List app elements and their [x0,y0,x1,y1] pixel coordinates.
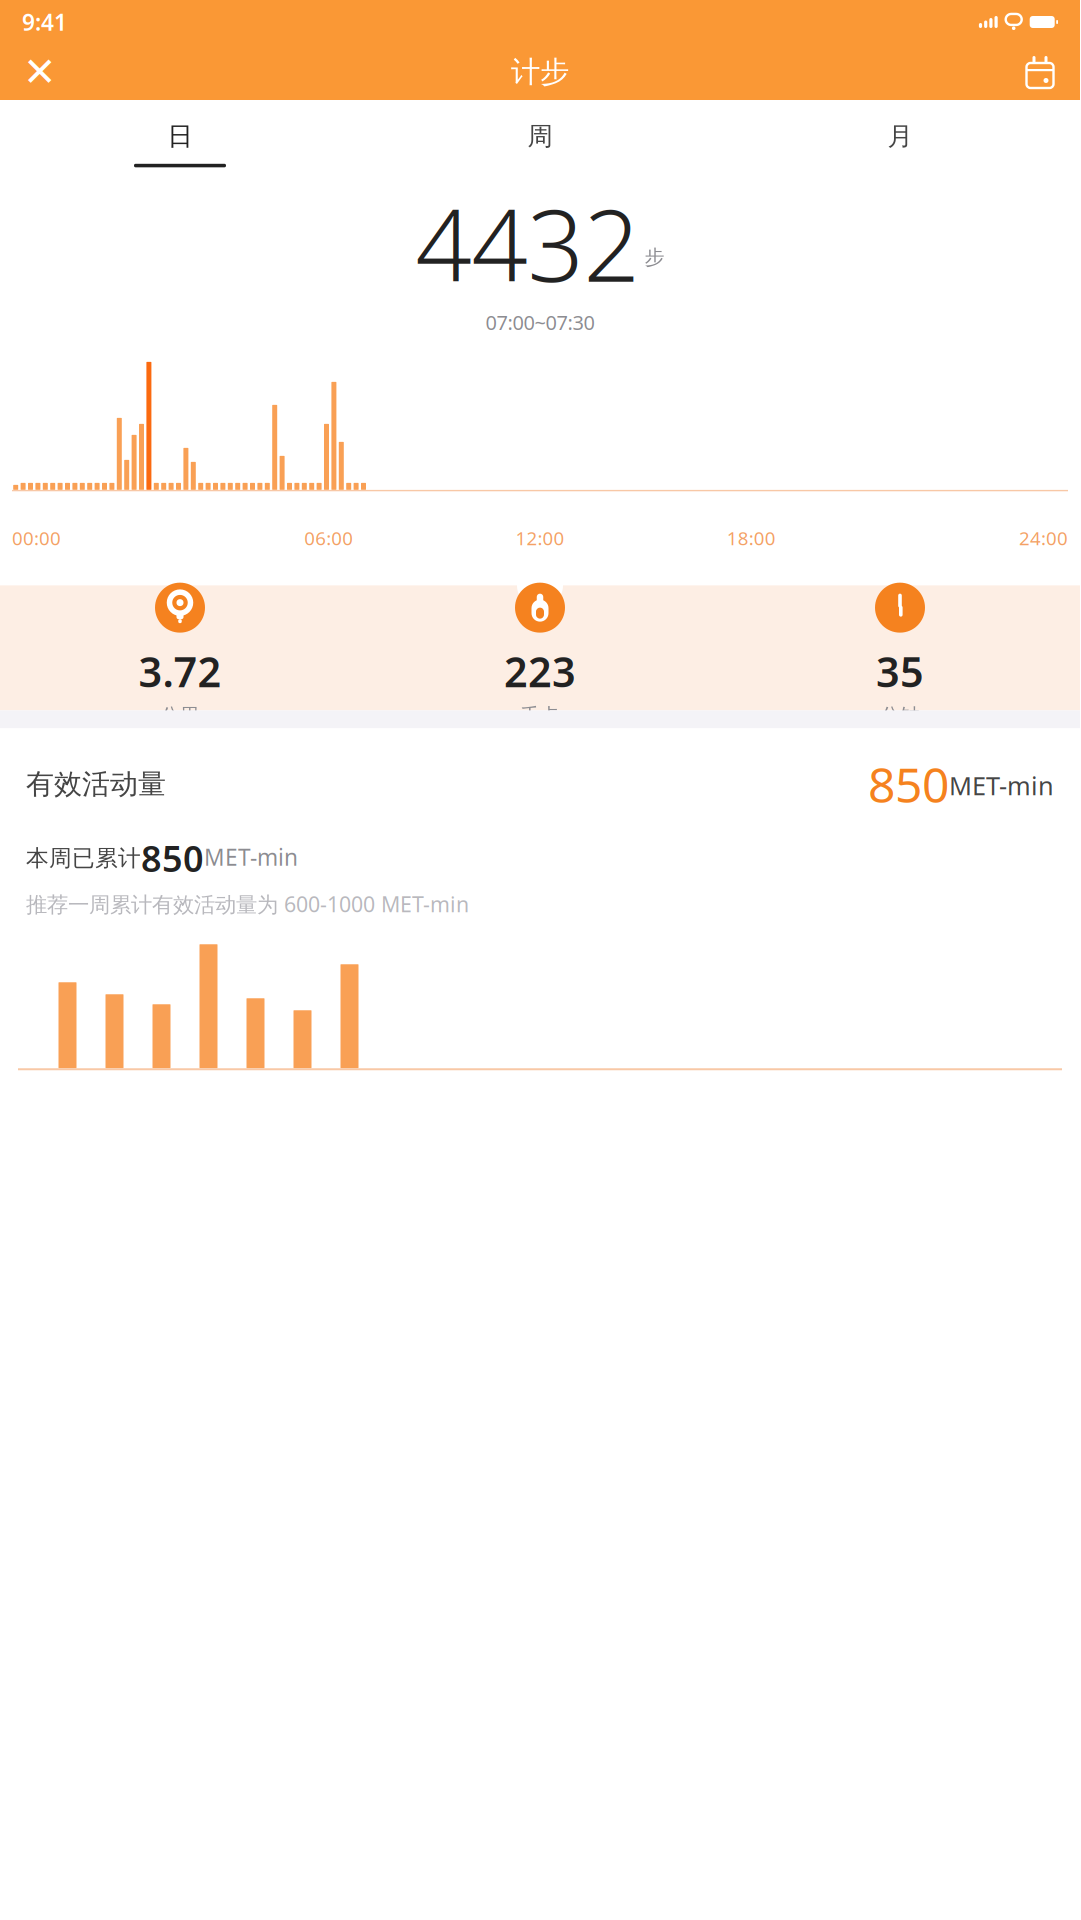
button[interactable]: 35 [720,583,1080,728]
staticText: 推荐一周累计有效活动量为 600-1000 MET-min [26,890,469,918]
button[interactable]: 3.72 [0,583,360,728]
button[interactable]: 223 [360,583,720,728]
staticText: 本周已累计 [26,844,141,872]
staticText: ✕ [23,49,57,95]
staticText: 分钟 [880,703,920,728]
button[interactable]: 周 [360,106,720,172]
staticText: 12:00 [515,526,564,550]
staticText: 计步 [511,54,569,90]
staticText: 步 [644,245,664,269]
staticText: 有效活动量 [26,767,166,801]
staticText: 850 [868,752,949,816]
staticText: 06:00 [304,526,353,550]
staticText: 4432 [415,178,639,309]
staticText: 18:00 [727,526,776,550]
staticText: 24:00 [1019,526,1068,550]
staticText: 千卡 [520,703,560,728]
staticText: 850 [141,834,204,882]
staticText: 周 [527,121,552,152]
staticText: 日 [167,121,192,152]
staticText: 35 [876,644,924,698]
button[interactable]: 月 [720,106,1080,172]
staticText: 月 [887,121,912,152]
button[interactable]: Calendar [1014,46,1066,98]
staticText: 公里 [160,703,200,728]
staticText: 3.72 [138,644,221,698]
staticText: 07:00~07:30 [485,309,594,336]
staticText: MET-min [204,842,298,872]
button[interactable]: 日 [0,106,360,172]
staticText: 223 [504,644,576,698]
button[interactable]: Close [14,46,66,98]
staticText: MET-min [949,769,1054,802]
staticText: 00:00 [12,526,61,550]
staticText: 9:41 [22,7,67,37]
